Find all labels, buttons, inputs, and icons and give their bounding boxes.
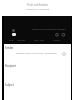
staticText: Recipient xyxy=(5,64,17,67)
staticText: Compose a message xyxy=(0,7,75,10)
staticText: Subject xyxy=(5,83,14,86)
other: App icon xyxy=(12,33,16,36)
staticText: Sender xyxy=(5,46,14,49)
staticText: Reply now xyxy=(34,39,44,42)
staticText: Preview of the notification message xyxy=(32,28,66,31)
staticText: Subject/Title of the push notification xyxy=(16,51,57,54)
staticText: Dismiss xyxy=(53,39,61,42)
staticText: Push notification xyxy=(0,3,75,7)
staticText: Now xyxy=(9,39,14,42)
staticText: Message xyxy=(17,39,26,42)
